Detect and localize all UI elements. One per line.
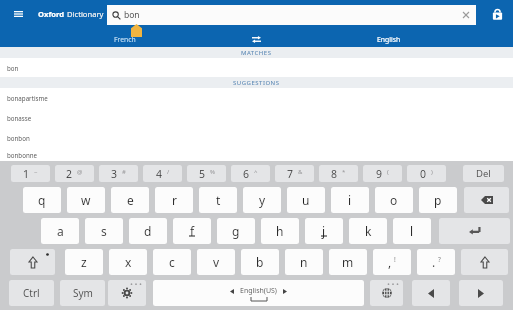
button[interactable]: bonbon xyxy=(0,128,513,148)
button[interactable]: 6 xyxy=(231,165,270,182)
button[interactable]: g xyxy=(217,218,255,244)
staticText: English(US) xyxy=(240,286,277,296)
button[interactable]: bon xyxy=(0,58,513,77)
button[interactable]: Change language xyxy=(370,280,403,306)
button[interactable]: Shift xyxy=(10,249,55,275)
staticText: p xyxy=(434,192,442,208)
button[interactable]: i xyxy=(331,187,369,213)
button[interactable]: 1 xyxy=(11,165,50,182)
button[interactable]: bonbonne xyxy=(0,148,513,161)
staticText: bonasse xyxy=(7,114,32,122)
staticText: bonapartisme xyxy=(7,94,48,102)
button[interactable]: 2 xyxy=(55,165,94,182)
button[interactable]: a xyxy=(41,218,79,244)
staticText: Sym xyxy=(73,286,93,300)
button[interactable]: Backspace xyxy=(464,187,509,213)
button[interactable]: Left xyxy=(412,280,450,306)
button[interactable]: Play Store xyxy=(487,4,507,24)
button[interactable]: l xyxy=(393,218,431,244)
staticText: @ xyxy=(77,168,83,176)
staticText: t xyxy=(216,192,221,208)
staticText: French xyxy=(114,35,136,44)
staticText: x xyxy=(125,254,132,270)
staticText: z xyxy=(81,254,87,270)
staticText: m xyxy=(342,254,354,270)
button[interactable]: English xyxy=(264,27,513,47)
button[interactable]: 5 xyxy=(187,165,226,182)
button[interactable]: Swap languages xyxy=(249,27,264,47)
staticText: 0 xyxy=(420,167,427,181)
staticText: Dictionary xyxy=(67,9,104,19)
staticText: & xyxy=(298,168,303,176)
button[interactable]: q xyxy=(23,187,61,213)
button[interactable]: Clear search xyxy=(459,8,473,22)
staticText: 5 xyxy=(199,167,206,181)
button[interactable]: 7 xyxy=(275,165,314,182)
staticText: ~ xyxy=(34,168,38,176)
button[interactable]: French xyxy=(0,27,249,47)
staticText: i xyxy=(348,192,352,208)
button[interactable]: f xyxy=(173,218,211,244)
staticText: 3 xyxy=(111,167,118,181)
button[interactable]: u xyxy=(287,187,325,213)
button[interactable]: Settings xyxy=(108,280,146,306)
button[interactable]: w xyxy=(67,187,105,213)
button[interactable]: m xyxy=(329,249,367,275)
staticText: Del xyxy=(476,167,491,180)
staticText: k xyxy=(365,223,372,239)
button[interactable]: v xyxy=(197,249,235,275)
button[interactable]: k xyxy=(349,218,387,244)
button[interactable]: d xyxy=(129,218,167,244)
button[interactable]: t xyxy=(199,187,237,213)
staticText: * xyxy=(342,168,346,176)
staticText: 1 xyxy=(23,167,30,181)
button[interactable]: o xyxy=(375,187,413,213)
staticText: l xyxy=(410,223,414,239)
button[interactable]: Sym xyxy=(60,280,105,306)
button[interactable]: h xyxy=(261,218,299,244)
button[interactable]: n xyxy=(285,249,323,275)
button[interactable]: 3 xyxy=(99,165,138,182)
staticText: f xyxy=(190,223,195,239)
button[interactable]: r xyxy=(155,187,193,213)
button[interactable]: p xyxy=(419,187,457,213)
button[interactable]: z xyxy=(65,249,103,275)
button[interactable]: b xyxy=(241,249,279,275)
staticText: h xyxy=(276,223,284,239)
staticText: g xyxy=(232,223,240,239)
button[interactable]: Menu xyxy=(9,5,27,23)
button[interactable]: Del xyxy=(463,165,504,182)
staticText: u xyxy=(302,192,310,208)
button[interactable]: 4 xyxy=(143,165,182,182)
staticText: 9 xyxy=(376,167,383,181)
staticText: 8 xyxy=(331,167,338,181)
staticText: English xyxy=(377,35,401,44)
button[interactable]: j xyxy=(305,218,343,244)
button[interactable]: Ctrl xyxy=(9,280,54,306)
staticText: Ctrl xyxy=(23,286,40,300)
staticText: 4 xyxy=(156,167,163,181)
button[interactable]: bon xyxy=(107,5,476,25)
button[interactable]: bonasse xyxy=(0,108,513,128)
button[interactable]: c xyxy=(153,249,191,275)
staticText: y xyxy=(259,192,266,208)
button[interactable]: , xyxy=(373,249,411,275)
button[interactable]: 0 xyxy=(407,165,446,182)
button[interactable]: e xyxy=(111,187,149,213)
staticText: n xyxy=(300,254,308,270)
button[interactable]: 9 xyxy=(363,165,402,182)
button[interactable]: s xyxy=(85,218,123,244)
button[interactable]: Enter xyxy=(439,218,510,244)
button[interactable]: x xyxy=(109,249,147,275)
staticText: v xyxy=(213,254,220,270)
staticText: ( xyxy=(387,168,389,176)
staticText: SUGGESTIONS xyxy=(233,79,280,87)
staticText: r xyxy=(172,192,177,208)
button[interactable]: 8 xyxy=(319,165,358,182)
button[interactable]: Right xyxy=(459,280,503,306)
button[interactable]: bonapartisme xyxy=(0,88,513,108)
button[interactable]: y xyxy=(243,187,281,213)
button[interactable]: Space xyxy=(153,280,364,306)
button[interactable]: . xyxy=(417,249,455,275)
button[interactable]: Shift xyxy=(461,249,508,275)
